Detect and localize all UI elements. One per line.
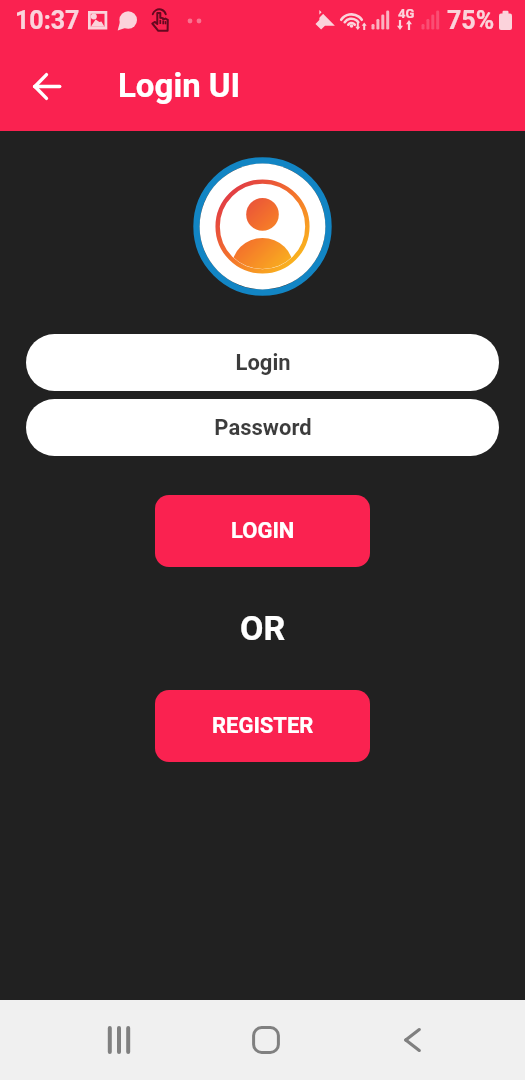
button[interactable]: Password: [26, 399, 499, 456]
staticText: Login UI: [118, 66, 241, 105]
staticText: Password: [214, 415, 312, 441]
button[interactable]: LOGIN: [155, 495, 370, 567]
button[interactable]: REGISTER: [155, 690, 370, 762]
staticText: OR: [240, 608, 286, 646]
button[interactable]: Recent apps: [83, 1004, 155, 1076]
button[interactable]: Login: [26, 334, 499, 391]
staticText: LOGIN: [231, 518, 295, 544]
staticText: 10:37: [15, 6, 80, 35]
button[interactable]: Back: [18, 58, 74, 114]
staticText: REGISTER: [212, 713, 314, 739]
staticText: 4G: [398, 6, 415, 21]
button[interactable]: Home: [230, 1004, 302, 1076]
staticText: Login: [235, 350, 291, 376]
button[interactable]: Back: [376, 1004, 448, 1076]
staticText: 75%: [447, 6, 495, 35]
